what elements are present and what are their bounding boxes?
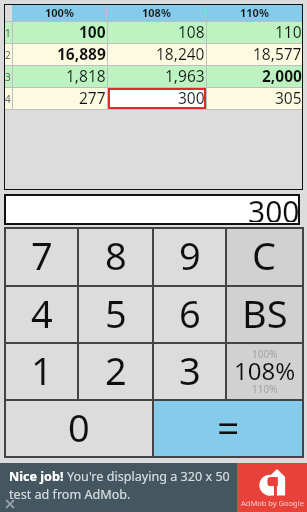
staticText: 8 — [105, 229, 127, 281]
staticText: 2 — [5, 48, 11, 62]
button[interactable]: 18,577 — [207, 44, 303, 65]
button[interactable]: 300 — [108, 88, 206, 109]
staticText: test ad from AdMob. — [9, 486, 131, 503]
staticText: 305 — [275, 87, 302, 108]
staticText: 0 — [68, 401, 90, 453]
staticText: C — [252, 229, 277, 281]
staticText: 4 — [5, 92, 11, 106]
button[interactable]: Close ad — [2, 496, 18, 512]
button[interactable]: 100% — [227, 344, 302, 399]
staticText: AdMob by Google — [241, 498, 304, 508]
staticText: 4 — [31, 287, 53, 339]
staticText: 7 — [31, 229, 53, 281]
staticText: 110% — [252, 382, 278, 396]
button[interactable]: 16,889 — [13, 44, 107, 65]
staticText: 16,889 — [57, 43, 106, 64]
button[interactable]: 8 — [79, 229, 152, 285]
button[interactable]: 305 — [207, 88, 303, 109]
button[interactable]: 2 — [79, 344, 152, 399]
button[interactable]: 108 — [108, 22, 206, 43]
button[interactable]: 110 — [207, 22, 303, 43]
staticText: 1 — [31, 344, 53, 396]
staticText: Nice job! — [9, 468, 67, 485]
button[interactable]: C — [227, 229, 302, 285]
staticText: 3 — [5, 70, 11, 84]
staticText: 300 — [248, 191, 300, 222]
staticText: 2 — [105, 344, 127, 396]
button[interactable]: 108% — [107, 4, 205, 21]
button[interactable]: 18,240 — [108, 44, 206, 65]
button[interactable]: 100% — [12, 4, 106, 21]
button[interactable]: 110% — [206, 4, 303, 21]
staticText: 277 — [79, 87, 106, 108]
staticText: 100% — [252, 347, 278, 361]
button[interactable]: 1,963 — [108, 66, 206, 87]
staticText: = — [217, 400, 240, 453]
button[interactable]: 2,000 — [207, 66, 303, 87]
button[interactable]: 0 — [6, 401, 152, 456]
button[interactable]: 100 — [13, 22, 107, 43]
staticText: 108% — [142, 5, 171, 20]
button[interactable]: BS — [227, 287, 302, 342]
button[interactable]: = — [154, 401, 302, 456]
staticText: You're displaying a 320 x 50 — [67, 468, 230, 485]
button[interactable]: 7 — [6, 229, 77, 285]
staticText: 18,577 — [253, 43, 302, 64]
staticText: 6 — [179, 287, 201, 339]
staticText: 108 — [178, 21, 205, 42]
button[interactable]: 3 — [154, 344, 225, 399]
staticText: 100% — [45, 5, 74, 20]
staticText: 110% — [240, 5, 269, 20]
staticText: 108% — [234, 354, 296, 387]
staticText: 110 — [275, 21, 302, 42]
staticText: 1,963 — [165, 65, 205, 86]
button[interactable]: 4 — [6, 287, 77, 342]
button[interactable]: 6 — [154, 287, 225, 342]
button[interactable]: 277 — [13, 88, 107, 109]
staticText: 1,818 — [66, 65, 106, 86]
button[interactable]: 1,818 — [13, 66, 107, 87]
button[interactable]: 5 — [79, 287, 152, 342]
staticText: 100 — [79, 21, 106, 42]
button[interactable]: 9 — [154, 229, 225, 285]
staticText: 1 — [5, 26, 11, 40]
staticText: 300 — [178, 87, 205, 108]
staticText: 5 — [105, 287, 127, 339]
staticText: 3 — [179, 344, 201, 396]
button[interactable]: AdMob by Google — [237, 463, 307, 512]
button[interactable]: Nice job! — [0, 463, 237, 512]
button[interactable]: 1 — [6, 344, 77, 399]
staticText: 18,240 — [156, 43, 205, 64]
staticText: 9 — [179, 229, 201, 281]
staticText: BS — [242, 287, 288, 339]
staticText: 2,000 — [262, 65, 302, 86]
